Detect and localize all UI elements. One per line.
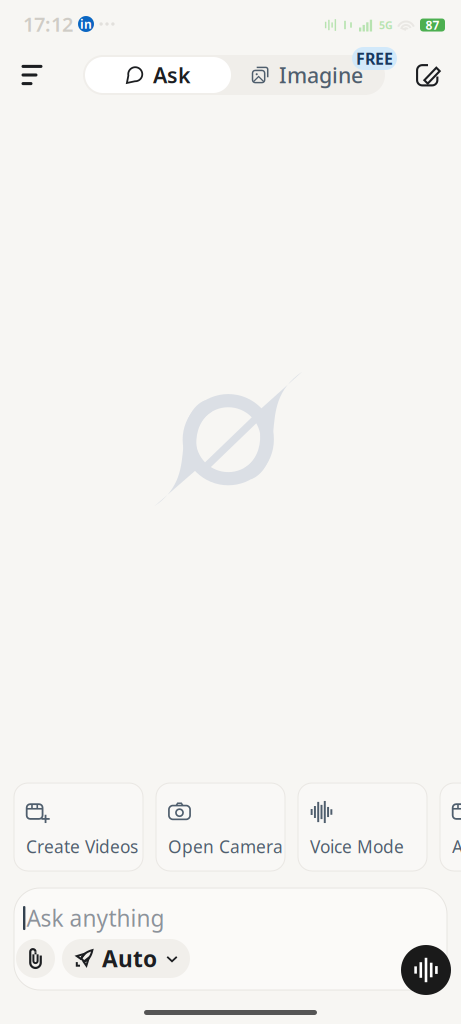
- staticText: Ask anything: [26, 903, 164, 933]
- button[interactable]: Create Videos: [14, 783, 143, 871]
- staticText: 17:12: [23, 11, 73, 37]
- staticText: Voice Mode: [310, 835, 404, 858]
- button[interactable]: Attach file: [16, 939, 55, 978]
- staticText: FREE: [356, 48, 393, 69]
- staticText: Ar: [452, 835, 461, 858]
- button[interactable]: Ask: [85, 57, 231, 93]
- button[interactable]: Menu: [10, 53, 54, 97]
- staticText: 87: [425, 17, 439, 33]
- button[interactable]: Voice mode: [401, 945, 451, 995]
- staticText: in: [80, 16, 92, 32]
- button[interactable]: Auto: [62, 939, 190, 978]
- staticText: 5G: [379, 18, 393, 32]
- staticText: Create Videos: [26, 835, 138, 858]
- button[interactable]: New chat: [406, 53, 450, 97]
- button[interactable]: Ar: [440, 783, 461, 871]
- staticText: Auto: [102, 943, 157, 973]
- button[interactable]: Imagine: [231, 57, 383, 93]
- button[interactable]: Open Camera: [156, 783, 285, 871]
- staticText: Open Camera: [168, 835, 283, 858]
- button[interactable]: Voice Mode: [298, 783, 427, 871]
- staticText: Imagine: [279, 61, 363, 89]
- staticText: Ask: [153, 61, 191, 89]
